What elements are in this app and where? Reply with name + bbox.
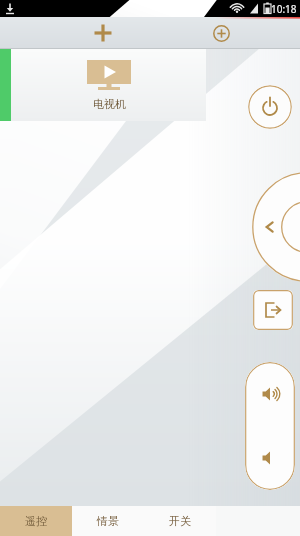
button[interactable]: Add bbox=[207, 19, 235, 47]
staticText: 电视机 bbox=[93, 97, 126, 111]
button[interactable]: 情景 bbox=[72, 506, 144, 536]
staticText: 10:18 bbox=[271, 2, 297, 16]
button[interactable]: Exit bbox=[253, 290, 293, 330]
button[interactable]: 开关 bbox=[144, 506, 216, 536]
button[interactable]: Left bbox=[258, 215, 282, 239]
button[interactable]: 遥控 bbox=[0, 506, 72, 536]
staticText: 遥控 bbox=[25, 514, 47, 528]
button[interactable]: 电视机 bbox=[0, 49, 206, 121]
button[interactable]: Volume up bbox=[245, 362, 295, 426]
button[interactable]: Add device bbox=[88, 18, 118, 48]
button[interactable]: Volume down bbox=[245, 426, 295, 490]
staticText: 开关 bbox=[169, 514, 191, 528]
staticText: 情景 bbox=[97, 514, 119, 528]
button[interactable]: Power bbox=[248, 85, 292, 129]
